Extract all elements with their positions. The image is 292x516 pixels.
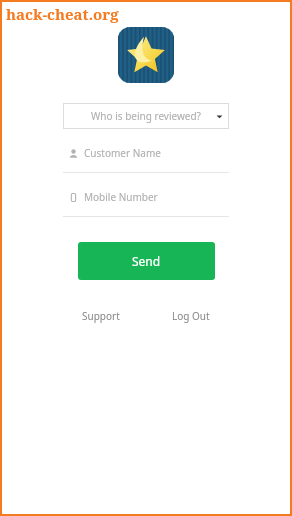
staticText: Customer Name: [84, 146, 161, 160]
staticText: hack-cheat.org: [6, 4, 119, 24]
staticText: Who is being reviewed?: [91, 109, 201, 123]
button[interactable]: Log Out: [146, 309, 236, 323]
button[interactable]: Customer Name: [63, 143, 229, 173]
button[interactable]: Send: [78, 242, 215, 280]
staticText: Mobile Number: [84, 190, 158, 204]
other: App icon: [118, 27, 174, 83]
staticText: Log Out: [172, 309, 210, 323]
staticText: Support: [82, 309, 120, 323]
button[interactable]: Mobile Number: [63, 187, 229, 217]
staticText: Send: [132, 253, 161, 269]
button[interactable]: Support: [56, 309, 146, 323]
button[interactable]: Who is being reviewed?: [63, 103, 229, 129]
